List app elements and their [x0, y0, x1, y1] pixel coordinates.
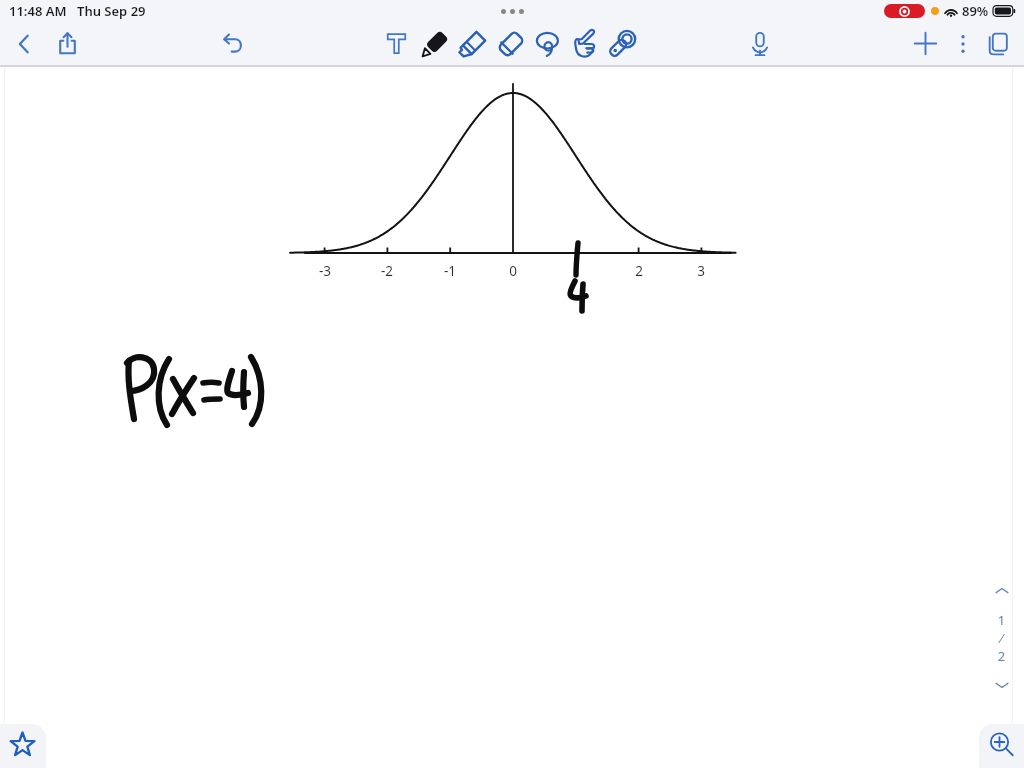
staticText: ⁄	[989, 629, 1014, 647]
button[interactable]: Text tool	[377, 22, 415, 65]
button[interactable]: Undo	[213, 22, 251, 65]
staticText: -3	[310, 262, 340, 280]
button[interactable]: Sticker	[603, 22, 641, 65]
button[interactable]: Add	[906, 22, 944, 65]
staticText: 2	[989, 647, 1014, 665]
button[interactable]: More options	[944, 22, 982, 65]
button[interactable]: Share	[48, 22, 86, 65]
staticText: 0	[498, 262, 528, 280]
button[interactable]: Highlighter	[454, 22, 492, 65]
staticText: 1	[561, 262, 591, 280]
button[interactable]: Microphone	[741, 22, 779, 65]
button[interactable]: Pen tool	[416, 22, 454, 65]
staticText: Thu Sep 29	[77, 2, 146, 20]
staticText: -2	[372, 262, 402, 280]
staticText: 1	[989, 611, 1014, 629]
staticText: -1	[435, 262, 465, 280]
button[interactable]: Zoom in	[979, 724, 1024, 768]
staticText: 2	[624, 262, 654, 280]
staticText: 3	[686, 262, 716, 280]
button[interactable]: Eraser	[492, 22, 530, 65]
staticText: 89%	[962, 2, 989, 20]
button[interactable]: Lasso	[529, 22, 567, 65]
button[interactable]: Pages	[979, 22, 1017, 65]
button[interactable]: Recording	[884, 4, 925, 18]
button[interactable]: Favorite	[0, 724, 46, 768]
button[interactable]: Hand	[566, 22, 604, 65]
button[interactable]: Back	[5, 22, 43, 65]
button[interactable]: Previous page	[989, 578, 1014, 603]
button[interactable]: Next page	[989, 672, 1014, 697]
staticText: 11:48 AM	[9, 2, 67, 20]
